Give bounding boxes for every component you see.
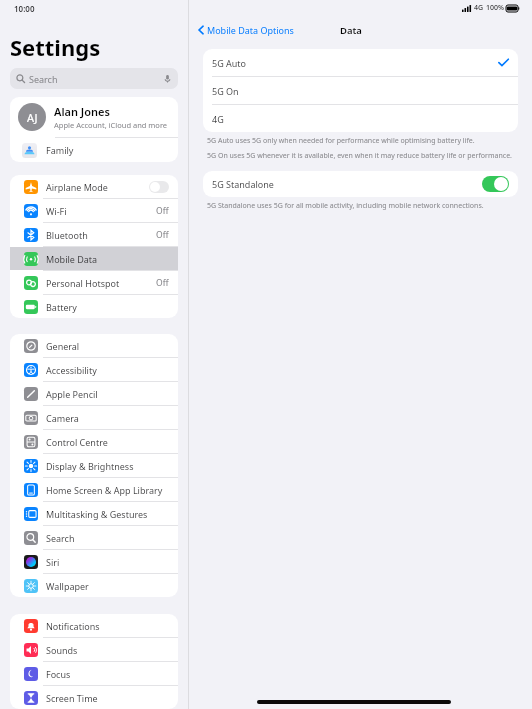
button[interactable]: Display & Brightness (10, 454, 178, 477)
button[interactable]: Multitasking & Gestures (10, 502, 178, 525)
staticText: Search (46, 532, 75, 544)
staticText: 4G (212, 113, 224, 125)
button[interactable]: Apple Pencil (10, 382, 178, 405)
button[interactable]: Search (10, 68, 178, 89)
staticText: Focus (46, 668, 71, 680)
staticText: General (46, 340, 80, 352)
button[interactable]: Focus (10, 662, 178, 685)
button[interactable]: Siri (10, 550, 178, 573)
staticText: 5G Auto (212, 57, 247, 69)
button[interactable]: Personal Hotspot (10, 271, 178, 294)
staticText: 5G Standalone (212, 178, 274, 190)
button[interactable]: Notifications (10, 614, 178, 637)
staticText: Data (340, 24, 362, 37)
staticText: 5G Standalone uses 5G for all mobile act… (207, 201, 514, 211)
button[interactable]: Bluetooth (10, 223, 178, 246)
staticText: 5G On (212, 85, 239, 97)
staticText: Mobile Data (46, 253, 98, 265)
staticText: Off (156, 205, 169, 217)
staticText: 5G On uses 5G whenever it is available, … (207, 151, 514, 161)
button[interactable]: 5G Auto (203, 49, 518, 76)
staticText: Apple Account, iCloud and more (54, 120, 168, 130)
staticText: Airplane Mode (46, 181, 108, 193)
staticText: Alan Jones (54, 104, 110, 119)
staticText: 5G Auto uses 5G only when needed for per… (207, 136, 514, 146)
staticText: Apple Pencil (46, 388, 98, 400)
staticText: Wallpaper (46, 580, 89, 592)
button[interactable]: 4G (203, 105, 518, 132)
staticText: Off (156, 229, 169, 241)
button[interactable]: 5G Standalone toggle (482, 176, 509, 192)
staticText: Family (46, 144, 74, 156)
button[interactable]: Wi-Fi (10, 199, 178, 222)
button[interactable]: Home Screen & App Library (10, 478, 178, 501)
button[interactable]: Accessibility (10, 358, 178, 381)
button[interactable]: Screen Time (10, 686, 178, 709)
staticText: Off (156, 277, 169, 289)
staticText: Search (29, 73, 58, 85)
staticText: Camera (46, 412, 79, 424)
staticText: 10:00 (14, 3, 35, 14)
staticText: Mobile Data Options (207, 24, 294, 36)
staticText: Multitasking & Gestures (46, 508, 148, 520)
button[interactable]: Camera (10, 406, 178, 429)
staticText: Siri (46, 556, 60, 568)
staticText: Wi-Fi (46, 205, 67, 217)
staticText: 100% (486, 3, 504, 13)
staticText: Battery (46, 301, 77, 313)
button[interactable]: Airplane Mode (10, 175, 178, 198)
button[interactable]: 5G Standalone (203, 171, 518, 197)
staticText: Control Centre (46, 436, 108, 448)
button[interactable]: Search (10, 526, 178, 549)
button[interactable]: Wallpaper (10, 574, 178, 597)
staticText: Accessibility (46, 364, 97, 376)
staticText: Display & Brightness (46, 460, 134, 472)
staticText: Bluetooth (46, 229, 88, 241)
button[interactable]: Battery (10, 295, 178, 318)
button[interactable]: Control Centre (10, 430, 178, 453)
button[interactable]: 5G On (203, 77, 518, 104)
staticText: 4G (474, 3, 484, 13)
staticText: AJ (27, 110, 38, 125)
staticText: Sounds (46, 644, 78, 656)
button[interactable]: Mobile Data (10, 247, 178, 270)
button[interactable]: Airplane Mode toggle (149, 181, 169, 193)
button[interactable]: Mobile Data Options (196, 21, 296, 39)
staticText: Home Screen & App Library (46, 484, 163, 496)
button[interactable]: AJ (10, 97, 178, 137)
staticText: Screen Time (46, 692, 98, 704)
staticText: Personal Hotspot (46, 277, 120, 289)
staticText: Settings (10, 32, 101, 62)
button[interactable]: Sounds (10, 638, 178, 661)
button[interactable]: General (10, 334, 178, 357)
staticText: Notifications (46, 620, 100, 632)
button[interactable]: Family (10, 138, 178, 162)
